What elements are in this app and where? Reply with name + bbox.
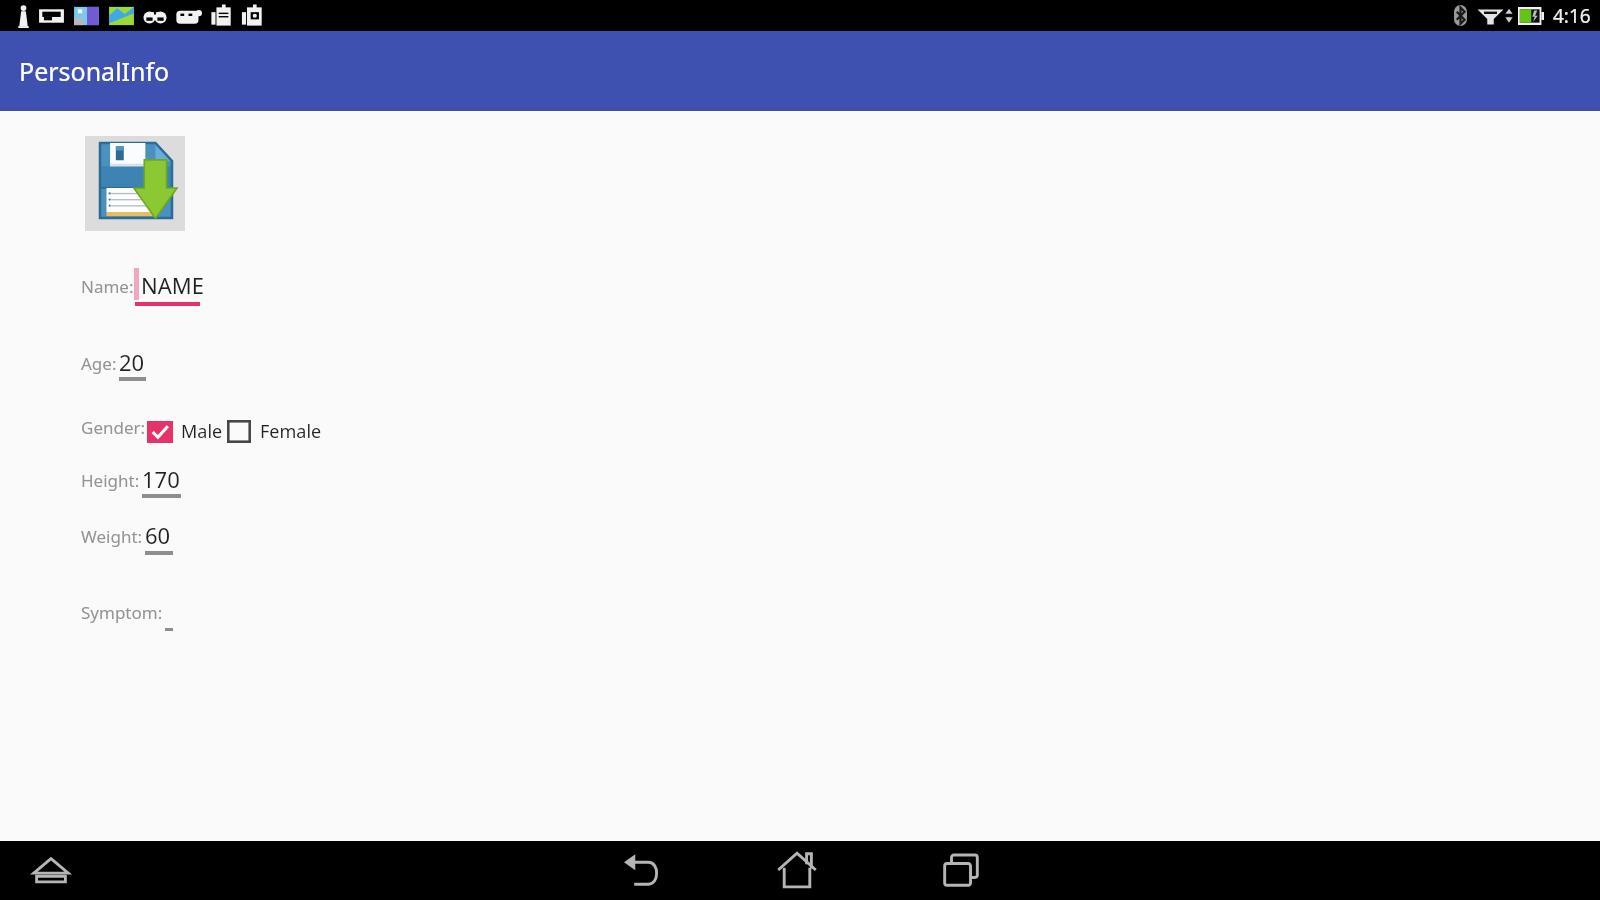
- staticText: 20: [119, 347, 145, 377]
- staticText: Male: [181, 419, 223, 444]
- button[interactable]: Age:: [81, 344, 168, 384]
- staticText: 60: [145, 520, 171, 550]
- staticText: Weight:: [81, 525, 143, 548]
- button[interactable]: Name:: [81, 267, 228, 307]
- staticText: Gender:: [81, 416, 146, 439]
- staticText: Female: [260, 419, 322, 444]
- button[interactable]: Home: [770, 846, 824, 894]
- button[interactable]: Hide keyboard: [27, 846, 75, 894]
- staticText: Symptom:: [81, 601, 163, 624]
- button[interactable]: Female: [227, 419, 322, 444]
- staticText: Age:: [81, 352, 117, 375]
- button[interactable]: Weight:: [81, 517, 195, 557]
- button[interactable]: PersonalInfo: [0, 31, 1600, 111]
- button[interactable]: Symptom:: [81, 593, 195, 633]
- staticText: Name:: [81, 275, 134, 298]
- staticText: PersonalInfo: [19, 54, 170, 88]
- staticText: 4:16: [1553, 3, 1591, 29]
- staticText: Height:: [81, 469, 140, 492]
- button[interactable]: Back: [614, 846, 668, 894]
- staticText: NAME: [141, 270, 204, 300]
- staticText: 170: [142, 464, 180, 494]
- button[interactable]: Height:: [81, 461, 203, 501]
- button[interactable]: Male: [147, 419, 223, 444]
- button[interactable]: Recents: [934, 846, 988, 894]
- button[interactable]: Save: [85, 136, 185, 231]
